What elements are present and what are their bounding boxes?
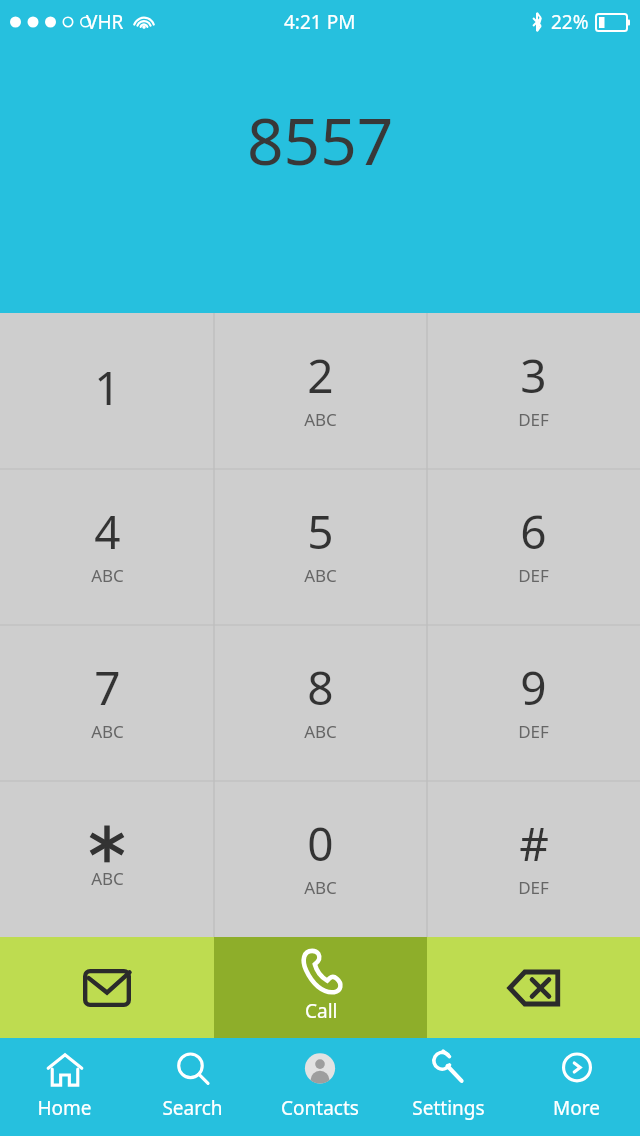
staticText: DEF [518,876,549,899]
button[interactable]: 0 [214,781,427,937]
button[interactable]: 3 [427,313,640,469]
staticText: ABC [304,876,337,899]
button[interactable]: ABC [0,781,214,937]
staticText: Call [305,998,338,1024]
staticText: # [519,812,549,875]
staticText: ABC [304,720,337,743]
staticText: Search [162,1095,223,1121]
staticText: ABC [91,564,124,587]
staticText: VHR [86,9,124,35]
button[interactable]: More [512,1038,640,1136]
button[interactable]: 4 [0,469,214,625]
button[interactable]: Search [128,1038,256,1136]
button[interactable]: Settings [384,1038,512,1136]
button[interactable]: 8 [214,625,427,781]
staticText: 7 [94,656,121,719]
button[interactable]: 1 [0,313,214,469]
staticText: More [553,1095,600,1121]
button[interactable]: 5 [214,469,427,625]
staticText: ABC [91,720,124,743]
button[interactable]: Message [0,937,214,1038]
staticText: 9 [520,656,547,719]
staticText: 4:21 PM [284,9,356,35]
staticText: DEF [518,408,549,431]
staticText: Contacts [281,1095,359,1121]
button[interactable]: Contacts [256,1038,384,1136]
staticText: 6 [520,500,547,563]
staticText: 22% [551,9,589,35]
staticText: ABC [91,867,124,890]
staticText: 8557 [247,97,394,184]
staticText: 8 [307,656,334,719]
button[interactable]: 9 [427,625,640,781]
staticText: 4 [94,500,121,563]
staticText: Settings [412,1095,485,1121]
staticText: ABC [304,408,337,431]
staticText: 0 [307,812,334,875]
button[interactable]: Call [214,937,427,1038]
button[interactable]: 2 [214,313,427,469]
staticText: DEF [518,720,549,743]
button[interactable]: # [427,781,640,937]
staticText: 1 [94,356,121,419]
button[interactable]: 7 [0,625,214,781]
staticText: 5 [307,500,334,563]
button[interactable]: Backspace [427,937,640,1038]
staticText: 3 [520,344,547,407]
staticText: DEF [518,564,549,587]
button[interactable]: Home [0,1038,128,1136]
button[interactable]: 6 [427,469,640,625]
staticText: ABC [304,564,337,587]
staticText: Home [37,1095,92,1121]
staticText: 2 [307,344,334,407]
